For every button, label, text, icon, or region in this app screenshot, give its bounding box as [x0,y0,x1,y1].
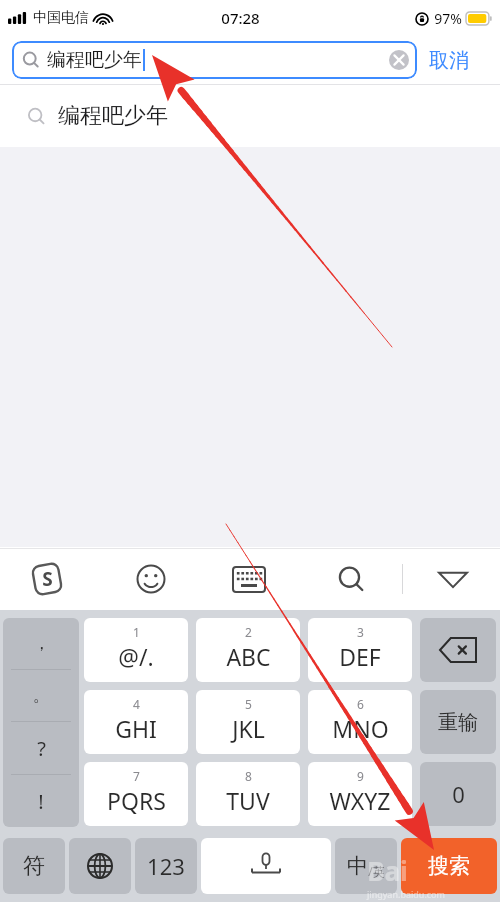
staticText: 9 [357,768,364,784]
staticText: @/. [118,641,154,672]
button[interactable]: ? [3,722,79,774]
staticText: 搜索 [428,853,470,879]
button[interactable]: ， [3,618,79,669]
staticText: TUV [226,785,270,816]
staticText: /英 [368,863,385,879]
button[interactable]: 6 [308,690,412,754]
button[interactable]: Clear [389,50,409,70]
staticText: GHI [115,713,157,744]
staticText: Bai [367,853,408,888]
button[interactable]: Emoji [131,559,171,599]
button[interactable]: 8 [196,762,300,826]
staticText: 7 [133,768,140,784]
staticText: jingyan.baidu.com [367,888,445,900]
staticText: 符 [23,852,45,880]
button[interactable]: Hide keyboard [432,558,474,600]
staticText: 编程吧少年 [47,48,142,72]
staticText: 1 [133,624,140,640]
button[interactable]: 9 [308,762,412,826]
staticText: 8 [245,768,252,784]
button[interactable]: 中 [335,838,397,894]
button[interactable]: 4 [84,690,188,754]
staticText: 5 [245,696,252,712]
button[interactable]: Sogou [26,558,68,600]
button[interactable]: 。 [3,670,79,721]
button[interactable]: 123 [135,838,197,894]
button[interactable]: Key [420,690,496,754]
button[interactable]: 7 [84,762,188,826]
staticText: 0 [452,779,465,809]
staticText: 取消 [429,48,469,73]
button[interactable]: 3 [308,618,412,682]
button[interactable]: 搜索 [401,838,497,894]
button[interactable]: Key [420,618,496,682]
staticText: JKL [232,713,265,744]
staticText: DEF [339,641,381,672]
staticText: 123 [147,851,185,881]
button[interactable]: 编程吧少年 [12,41,417,79]
button[interactable]: 2 [196,618,300,682]
staticText: 07:28 [221,8,260,28]
button[interactable]: Key [420,762,496,826]
staticText: ? [37,735,46,762]
staticText: 2 [245,624,252,640]
staticText: WXYZ [329,785,391,816]
button[interactable]: 5 [196,690,300,754]
button[interactable]: ! [3,775,79,827]
staticText: 中 [347,853,368,879]
staticText: ! [38,788,44,815]
button[interactable]: Space [201,838,331,894]
staticText: 重输 [438,710,478,735]
staticText: S [42,566,53,592]
staticText: 4 [133,696,140,712]
button[interactable]: Search [330,558,372,600]
button[interactable]: Language [69,838,131,894]
button[interactable]: Keyboard [228,558,270,600]
staticText: 编程吧少年 [58,102,168,130]
button[interactable]: 符 [3,838,65,894]
staticText: 中国电信 [33,9,89,27]
staticText: 6 [357,696,364,712]
button[interactable]: 取消 [429,48,469,73]
staticText: 97% [434,9,462,28]
button[interactable]: 编程吧少年 [0,85,500,147]
staticText: 3 [357,624,364,640]
button[interactable]: 1 [84,618,188,682]
staticText: MNO [332,713,389,744]
staticText: PQRS [107,785,166,816]
staticText: ABC [226,641,271,672]
staticText: 。 [33,685,50,706]
staticText: ， [33,633,50,654]
